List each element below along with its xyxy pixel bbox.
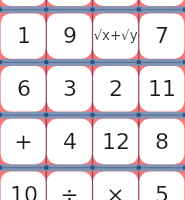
button[interactable]: √x+√y — [93, 13, 138, 58]
button[interactable]: 14 — [47, 0, 92, 6]
staticText: 4 — [63, 129, 77, 155]
button[interactable]: 10 — [1, 172, 46, 200]
button[interactable]: 12 — [93, 119, 138, 164]
staticText: 2 — [109, 76, 123, 102]
staticText: + — [14, 129, 33, 155]
button[interactable]: 9 — [47, 13, 92, 58]
staticText: 6 — [17, 76, 31, 102]
button[interactable]: 7 — [139, 13, 184, 58]
staticText: 5 — [155, 182, 169, 200]
staticText: 3 — [63, 76, 77, 102]
button[interactable]: 5 — [139, 172, 184, 200]
button[interactable]: × — [93, 172, 138, 200]
button[interactable]: 6 — [1, 66, 46, 111]
staticText: 9 — [63, 23, 77, 49]
button[interactable]: + — [1, 119, 46, 164]
button[interactable]: 4 — [47, 119, 92, 164]
staticText: 7 — [155, 23, 169, 49]
staticText: 1 — [17, 23, 31, 49]
staticText: 11 — [148, 76, 176, 102]
button[interactable]: 13 — [1, 0, 46, 6]
staticText: 10 — [10, 182, 38, 200]
button[interactable]: 15 — [93, 0, 138, 6]
staticText: ÷ — [60, 182, 79, 200]
button[interactable]: 8 — [139, 119, 184, 164]
button[interactable]: 16 — [139, 0, 184, 6]
button[interactable]: ÷ — [47, 172, 92, 200]
staticText: √x+√y — [93, 28, 138, 44]
staticText: 8 — [155, 129, 169, 155]
button[interactable]: 1 — [1, 13, 46, 58]
button[interactable]: 11 — [139, 66, 184, 111]
button[interactable]: 3 — [47, 66, 92, 111]
staticText: 12 — [102, 129, 130, 155]
staticText: × — [106, 182, 125, 200]
button[interactable]: 2 — [93, 66, 138, 111]
